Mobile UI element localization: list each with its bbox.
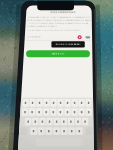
button[interactable]: Activate Mix Mastro screen <box>0 0 113 150</box>
